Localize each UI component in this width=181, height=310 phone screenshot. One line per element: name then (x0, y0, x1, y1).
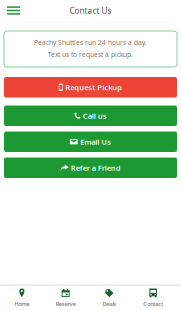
button[interactable]: Reserve (44, 286, 88, 310)
staticText: Home (14, 300, 29, 307)
button[interactable]: Request Pickup (4, 77, 177, 97)
button[interactable]: Menu (0, 0, 27, 21)
staticText: Text us to request a pickup. (48, 50, 133, 59)
button[interactable]: Email Us (4, 131, 177, 152)
staticText: Refer a Friend (71, 163, 121, 173)
staticText: Email Us (80, 137, 111, 147)
staticText: Peachy Shuttles run 24 hours a day. (34, 38, 147, 47)
button[interactable]: Deals (87, 286, 131, 310)
button[interactable]: Home (0, 286, 44, 310)
staticText: Reserve (56, 300, 76, 307)
staticText: Contact Us (69, 5, 111, 16)
button[interactable]: Refer a Friend (4, 157, 177, 178)
staticText: Deals (102, 300, 116, 307)
staticText: Call us (83, 111, 107, 121)
button[interactable]: Contact (131, 286, 175, 310)
staticText: Request Pickup (65, 82, 122, 92)
button[interactable]: Call us (4, 105, 177, 126)
staticText: Contact (143, 300, 163, 307)
